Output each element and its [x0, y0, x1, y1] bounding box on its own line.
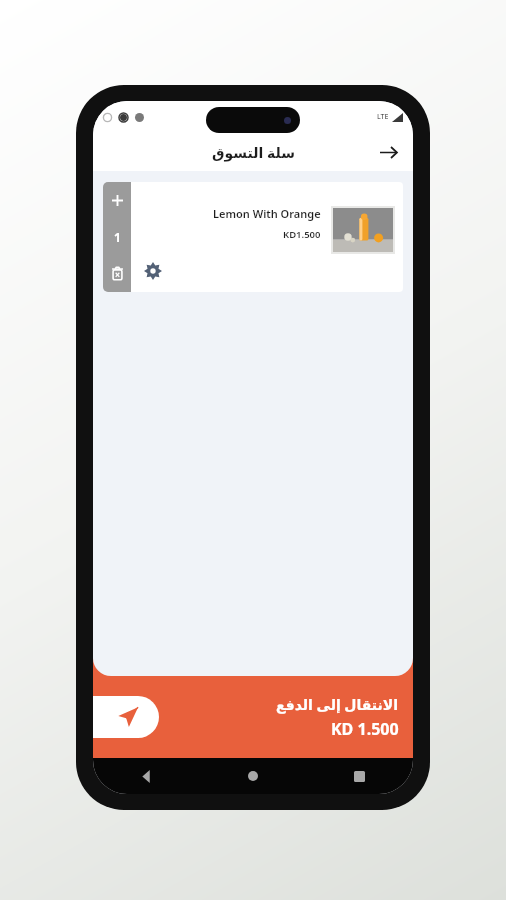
staticText: KD 1.500: [331, 718, 399, 740]
button[interactable]: Recent apps: [306, 758, 413, 794]
staticText: الانتقال إلى الدفع: [276, 695, 399, 714]
button[interactable]: Remove item: [103, 255, 131, 292]
other: Proceed to checkout: [93, 696, 159, 738]
staticText: سلة التسوق: [212, 143, 295, 162]
button[interactable]: Increase quantity: [103, 182, 403, 292]
button[interactable]: Increase quantity: [103, 182, 131, 218]
staticText: LTE: [377, 112, 389, 122]
button[interactable]: Back: [93, 758, 199, 794]
staticText: Lemon With Orange: [213, 206, 321, 221]
button[interactable]: Continue shopping: [371, 135, 405, 169]
staticText: KD1.500: [283, 228, 321, 241]
button[interactable]: Home: [199, 758, 306, 794]
staticText: 1: [114, 229, 121, 245]
button[interactable]: Proceed to checkout: [93, 676, 413, 758]
button[interactable]: Item options: [139, 257, 167, 285]
